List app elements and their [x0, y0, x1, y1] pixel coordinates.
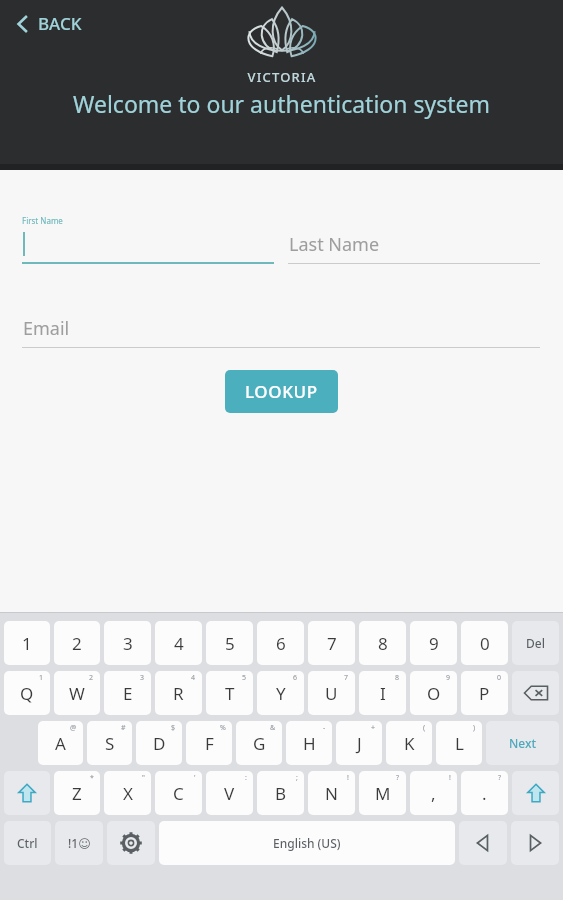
- button[interactable]: Ctrl: [4, 821, 51, 865]
- button[interactable]: #: [87, 721, 132, 765]
- button[interactable]: Email: [22, 298, 540, 348]
- button[interactable]: LOOKUP: [225, 370, 338, 413]
- staticText: 0: [480, 632, 490, 655]
- staticText: 8: [378, 632, 388, 655]
- button[interactable]: 6: [257, 621, 304, 665]
- staticText: ,: [431, 782, 436, 805]
- button[interactable]: 3: [104, 621, 151, 665]
- button[interactable]: Last Name: [288, 214, 540, 264]
- button[interactable]: Backspace: [512, 671, 559, 715]
- staticText: S: [105, 732, 115, 755]
- button[interactable]: !: [410, 771, 457, 815]
- button[interactable]: Next: [486, 721, 559, 765]
- button[interactable]: $: [136, 721, 182, 765]
- button[interactable]: 9: [410, 621, 457, 665]
- button[interactable]: *: [54, 771, 100, 815]
- staticText: ': [194, 773, 196, 783]
- staticText: Ctrl: [17, 835, 38, 851]
- button[interactable]: BACK: [10, 6, 88, 41]
- staticText: 9: [446, 673, 451, 683]
- staticText: -: [323, 723, 326, 733]
- staticText: Y: [276, 682, 286, 705]
- button[interactable]: 8: [359, 621, 406, 665]
- button[interactable]: 7: [308, 621, 355, 665]
- button[interactable]: 5: [206, 671, 253, 715]
- button[interactable]: First Name: [22, 214, 274, 264]
- button[interactable]: 0: [461, 621, 508, 665]
- button[interactable]: English (US): [159, 821, 455, 865]
- button[interactable]: 2: [54, 621, 100, 665]
- staticText: 2: [72, 632, 82, 655]
- staticText: BACK: [38, 12, 82, 35]
- staticText: Z: [72, 782, 82, 805]
- staticText: :: [245, 773, 247, 783]
- staticText: B: [275, 782, 287, 805]
- staticText: LOOKUP: [245, 380, 318, 403]
- button[interactable]: Keyboard settings: [107, 821, 155, 865]
- staticText: 2: [89, 673, 94, 683]
- button[interactable]: ;: [257, 771, 304, 815]
- staticText: English (US): [273, 835, 341, 851]
- button[interactable]: Move cursor right: [511, 821, 559, 865]
- button[interactable]: 1: [4, 621, 50, 665]
- button[interactable]: -: [286, 721, 332, 765]
- button[interactable]: ": [104, 771, 151, 815]
- button[interactable]: Shift: [512, 771, 559, 815]
- button[interactable]: 7: [308, 671, 355, 715]
- staticText: 5: [242, 673, 247, 683]
- staticText: First Name: [22, 215, 63, 226]
- staticText: R: [173, 682, 184, 705]
- staticText: #: [121, 723, 126, 733]
- button[interactable]: Shift: [4, 771, 50, 815]
- button[interactable]: &: [236, 721, 282, 765]
- staticText: 4: [174, 632, 184, 655]
- staticText: 1: [22, 632, 32, 655]
- staticText: L: [455, 732, 464, 755]
- staticText: !: [449, 773, 451, 783]
- button[interactable]: 4: [155, 621, 202, 665]
- staticText: F: [205, 732, 214, 755]
- staticText: O: [427, 682, 441, 705]
- staticText: %: [220, 723, 226, 733]
- button[interactable]: (: [386, 721, 432, 765]
- button[interactable]: ': [155, 771, 202, 815]
- staticText: 5: [225, 632, 235, 655]
- button[interactable]: 1: [4, 671, 50, 715]
- staticText: ?: [498, 773, 502, 783]
- button[interactable]: 2: [54, 671, 100, 715]
- button[interactable]: 5: [206, 621, 253, 665]
- staticText: +: [371, 723, 376, 733]
- staticText: E: [123, 682, 133, 705]
- button[interactable]: !1☺: [55, 821, 103, 865]
- staticText: 7: [327, 632, 337, 655]
- button[interactable]: Move cursor left: [459, 821, 507, 865]
- staticText: 7: [344, 673, 349, 683]
- staticText: (: [423, 723, 426, 733]
- button[interactable]: %: [186, 721, 232, 765]
- button[interactable]: ): [436, 721, 482, 765]
- button[interactable]: 6: [257, 671, 304, 715]
- button[interactable]: 8: [359, 671, 406, 715]
- staticText: Del: [526, 635, 545, 651]
- button[interactable]: Del: [512, 621, 559, 665]
- button[interactable]: 4: [155, 671, 202, 715]
- staticText: !: [347, 773, 349, 783]
- staticText: Email: [23, 316, 70, 341]
- button[interactable]: @: [38, 721, 83, 765]
- staticText: @: [70, 723, 77, 733]
- staticText: M: [375, 782, 391, 805]
- button[interactable]: 0: [461, 671, 508, 715]
- button[interactable]: 9: [410, 671, 457, 715]
- staticText: G: [253, 732, 266, 755]
- staticText: A: [55, 732, 66, 755]
- button[interactable]: ?: [461, 771, 508, 815]
- button[interactable]: ?: [359, 771, 406, 815]
- staticText: 8: [395, 673, 400, 683]
- button[interactable]: +: [336, 721, 382, 765]
- button[interactable]: :: [206, 771, 253, 815]
- staticText: $: [171, 723, 176, 733]
- button[interactable]: 3: [104, 671, 151, 715]
- button[interactable]: !: [308, 771, 355, 815]
- staticText: 6: [276, 632, 286, 655]
- staticText: H: [303, 732, 316, 755]
